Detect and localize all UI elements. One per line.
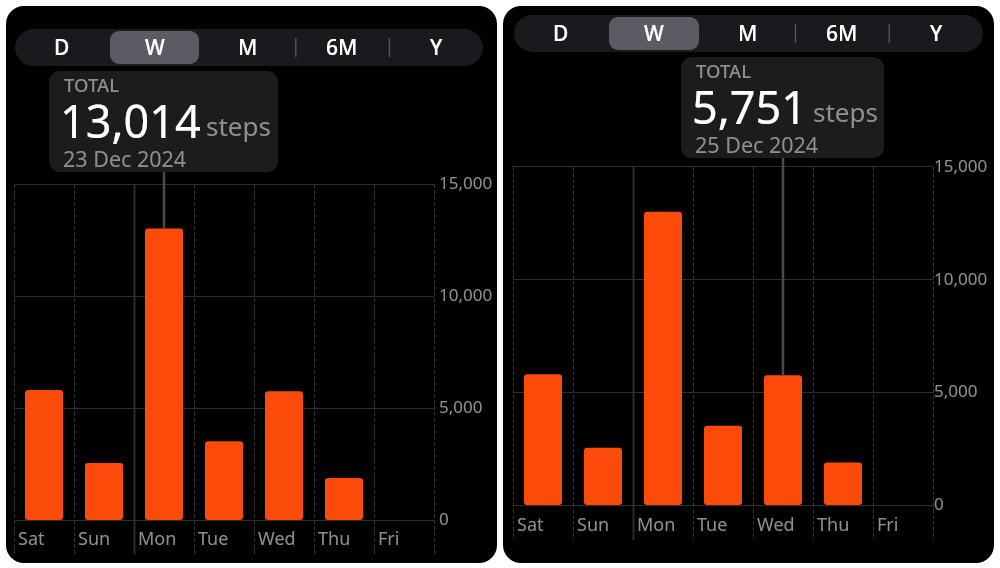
staticText: D [553, 19, 569, 48]
staticText: steps [813, 94, 878, 129]
staticText: TOTAL [696, 58, 752, 83]
staticText: Fri [877, 512, 899, 537]
staticText: steps [206, 108, 271, 143]
staticText: M [738, 19, 758, 48]
staticText: 15,000 [439, 171, 493, 194]
staticText: Thu [817, 512, 850, 537]
button[interactable]: TOTAL [49, 71, 278, 172]
button[interactable]: Y [391, 31, 481, 64]
staticText: Y [430, 33, 443, 62]
staticText: 15,000 [934, 154, 988, 177]
staticText: Mon [637, 512, 676, 537]
button[interactable]: D [516, 17, 605, 50]
staticText: Fri [378, 526, 400, 551]
staticText: Tue [697, 512, 728, 537]
staticText: 0 [439, 507, 449, 530]
button[interactable]: Y [891, 17, 981, 50]
staticText: 5,000 [439, 395, 483, 418]
staticText: Wed [757, 512, 795, 537]
staticText: Mon [138, 526, 177, 551]
staticText: D [54, 33, 70, 62]
staticText: Y [930, 19, 943, 48]
button[interactable]: D [17, 31, 106, 64]
staticText: 6M [326, 33, 358, 62]
staticText: 10,000 [439, 283, 493, 306]
staticText: M [238, 33, 258, 62]
staticText: TOTAL [64, 72, 120, 97]
staticText: 5,751 [692, 76, 808, 137]
staticText: Sun [78, 526, 111, 551]
staticText: 6M [826, 19, 858, 48]
button[interactable]: 6M [797, 17, 887, 50]
staticText: 23 Dec 2024 [63, 144, 187, 172]
staticText: Sat [517, 512, 544, 537]
staticText: W [644, 19, 664, 48]
staticText: Sat [18, 526, 45, 551]
staticText: Sun [577, 512, 610, 537]
staticText: 0 [934, 492, 944, 515]
button[interactable]: M [703, 17, 793, 50]
staticText: Tue [198, 526, 229, 551]
staticText: Thu [318, 526, 351, 551]
staticText: W [145, 33, 165, 62]
staticText: 5,000 [934, 379, 978, 402]
staticText: Wed [258, 526, 296, 551]
button[interactable]: M [203, 31, 293, 64]
button[interactable]: W [110, 31, 199, 64]
staticText: 10,000 [934, 267, 988, 290]
button[interactable]: 6M [297, 31, 387, 64]
staticText: 25 Dec 2024 [695, 130, 819, 158]
staticText: 13,014 [60, 90, 201, 151]
button[interactable]: W [609, 17, 699, 50]
button[interactable]: TOTAL [681, 57, 884, 158]
